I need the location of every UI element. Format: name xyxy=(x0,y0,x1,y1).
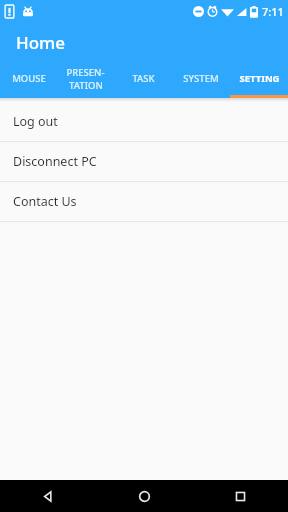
staticText: Home xyxy=(16,31,65,54)
staticText: TASK xyxy=(132,72,155,85)
button[interactable]: TASK xyxy=(114,62,172,95)
staticText: PRESEN- xyxy=(66,66,105,79)
button[interactable]: SETTING xyxy=(230,62,288,95)
button[interactable]: Back xyxy=(0,480,96,512)
staticText: Log out xyxy=(13,113,58,130)
button[interactable]: Contact Us xyxy=(0,182,288,222)
button[interactable]: Log out xyxy=(0,102,288,142)
staticText: Disconnect PC xyxy=(13,153,97,170)
staticText: 7:11 xyxy=(262,4,284,19)
button[interactable]: Home xyxy=(96,480,192,512)
button[interactable]: PRESEN- xyxy=(57,62,114,95)
staticText: Contact Us xyxy=(13,193,77,210)
staticText: SETTING xyxy=(239,72,280,85)
button[interactable]: SYSTEM xyxy=(172,62,230,95)
staticText: MOUSE xyxy=(12,72,46,85)
button[interactable]: Disconnect PC xyxy=(0,142,288,182)
button[interactable]: Recent apps xyxy=(192,480,288,512)
staticText: TATION xyxy=(69,79,103,92)
button[interactable]: MOUSE xyxy=(0,62,57,95)
staticText: SYSTEM xyxy=(183,72,219,85)
